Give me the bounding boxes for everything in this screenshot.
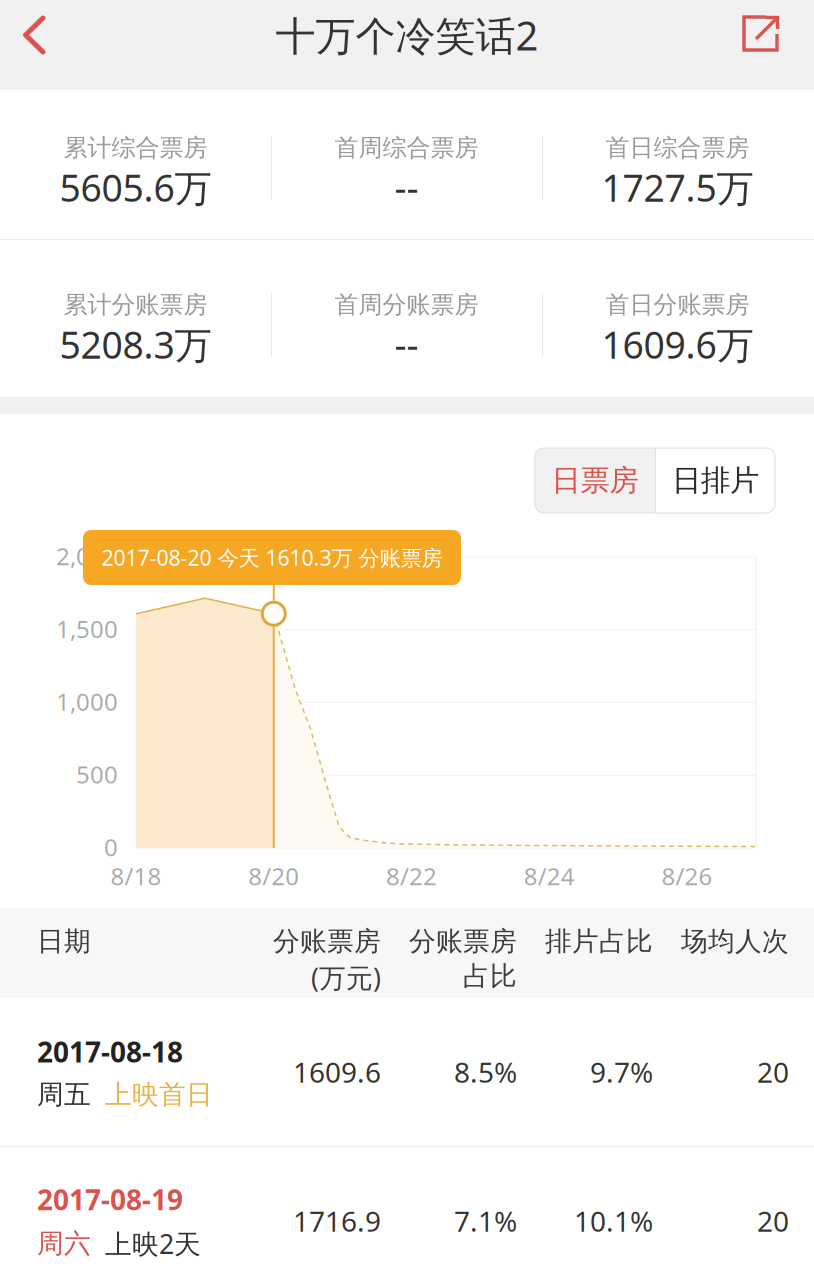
staticText: 5605.6万: [59, 162, 211, 212]
staticText: 0: [104, 831, 118, 863]
staticText: 8/20: [248, 860, 299, 892]
button[interactable]: 日票房: [535, 448, 655, 513]
button[interactable]: 日排片: [656, 448, 775, 513]
staticText: 日排片: [672, 462, 759, 498]
staticText: 首日综合票房: [605, 133, 749, 162]
staticText: 十万个冷笑话2: [275, 8, 538, 61]
staticText: 2017-08-20 今天 1610.3万 分账票房: [101, 543, 442, 572]
staticText: 2017-08-19: [37, 1181, 183, 1218]
button[interactable]: 2017-08-19: [0, 1147, 814, 1280]
staticText: 20: [757, 1202, 789, 1240]
staticText: 日票房: [551, 462, 638, 498]
staticText: 8/18: [110, 860, 161, 892]
staticText: 累计分账票房: [63, 290, 207, 319]
staticText: (万元): [311, 960, 381, 995]
staticText: 8.5%: [454, 1053, 517, 1091]
staticText: 500: [76, 758, 118, 790]
staticText: 8/26: [662, 860, 713, 892]
staticText: 1609.6万: [601, 319, 753, 369]
staticText: 上映首日: [105, 1078, 213, 1111]
staticText: --: [394, 319, 418, 369]
staticText: 2,000: [56, 540, 118, 572]
staticText: 8/22: [386, 860, 437, 892]
staticText: 5208.3万: [59, 319, 211, 369]
staticText: 场均人次: [681, 925, 789, 958]
staticText: 占比: [463, 960, 517, 993]
staticText: 2017-08-18: [37, 1033, 183, 1070]
staticText: 1,500: [56, 613, 118, 645]
button[interactable]: Back: [0, 0, 90, 90]
staticText: 1727.5万: [601, 162, 753, 212]
staticText: 上映2天: [105, 1226, 201, 1261]
staticText: 分账票房: [273, 925, 381, 958]
staticText: 1716.9: [293, 1202, 381, 1240]
staticText: 1609.6: [293, 1053, 381, 1091]
staticText: 日期: [37, 925, 91, 958]
staticText: 9.7%: [590, 1053, 653, 1091]
staticText: 排片占比: [545, 925, 653, 958]
staticText: 分账票房: [409, 925, 517, 958]
staticText: 首周分账票房: [334, 290, 478, 319]
staticText: --: [394, 162, 418, 212]
staticText: 周六: [37, 1227, 91, 1260]
button[interactable]: 2017-08-18: [0, 998, 814, 1146]
staticText: 10.1%: [574, 1202, 653, 1240]
staticText: 7.1%: [454, 1202, 517, 1240]
staticText: 首日分账票房: [605, 290, 749, 319]
button[interactable]: Share: [722, 0, 810, 90]
staticText: 8/24: [524, 860, 575, 892]
staticText: 20: [757, 1053, 789, 1091]
staticText: 1,000: [56, 685, 118, 717]
staticText: 周五: [37, 1078, 91, 1111]
staticText: 首周综合票房: [334, 133, 478, 162]
staticText: 累计综合票房: [63, 133, 207, 162]
